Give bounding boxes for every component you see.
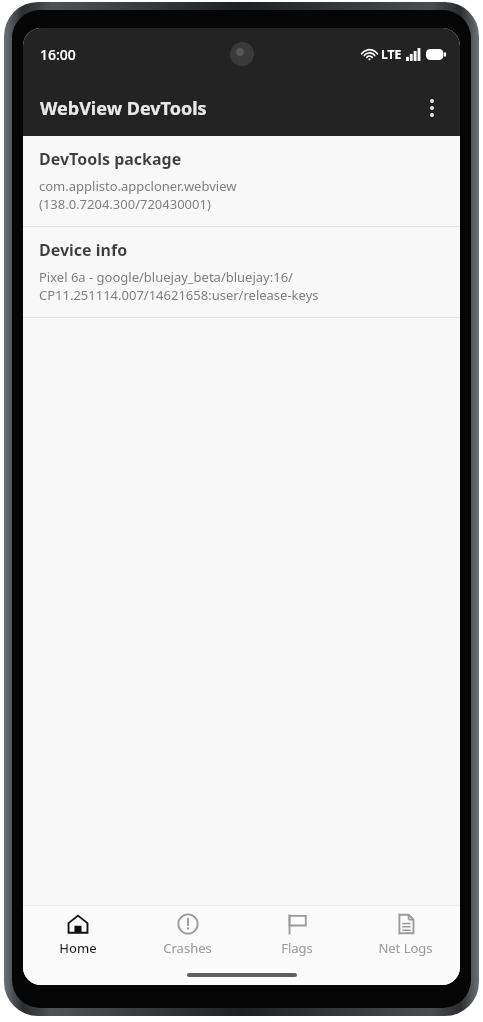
staticText: com.applisto.appcloner.webview (138.0.72… [39, 177, 237, 213]
button[interactable]: More options [410, 86, 454, 130]
staticText: Net Logs [378, 939, 433, 957]
staticText: Home [59, 939, 97, 957]
staticText: DevTools package [39, 148, 182, 170]
staticText: LTE [381, 46, 402, 62]
button[interactable]: Home [23, 906, 133, 964]
button[interactable]: Flags [242, 906, 351, 964]
button[interactable]: Device info [23, 227, 460, 317]
staticText: Device info [39, 239, 128, 261]
staticText: WebView DevTools [40, 96, 207, 121]
staticText: Flags [281, 939, 313, 957]
staticText: 16:00 [40, 45, 76, 64]
button[interactable]: Net Logs [351, 906, 460, 964]
button[interactable]: Crashes [133, 906, 242, 964]
staticText: Crashes [163, 939, 212, 957]
button[interactable]: DevTools package [23, 136, 460, 226]
staticText: Pixel 6a - google/bluejay_beta/bluejay:1… [39, 268, 319, 304]
